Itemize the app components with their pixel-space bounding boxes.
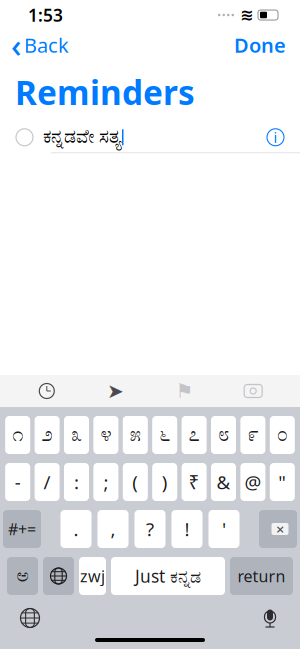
button[interactable]: ‹ <box>0 20 69 70</box>
button[interactable]: / <box>35 463 60 501</box>
button[interactable]: ೫ <box>123 416 148 454</box>
button[interactable]: Location <box>94 376 138 406</box>
staticText: Reminders <box>15 70 195 114</box>
button[interactable]: ಅ <box>7 557 38 595</box>
button[interactable]: ೩ <box>64 416 89 454</box>
button[interactable]: Just ಕನ್ನಡ <box>111 557 225 595</box>
staticText: , <box>110 517 115 541</box>
staticText: Done <box>234 32 286 58</box>
button[interactable]: ; <box>93 463 118 501</box>
staticText: return <box>237 565 285 587</box>
button[interactable]: ) <box>152 463 177 501</box>
button[interactable]: ೮ <box>211 416 236 454</box>
staticText: . <box>73 517 78 541</box>
staticText: zwj <box>80 565 105 587</box>
staticText: ೨ <box>42 425 53 445</box>
staticText: ೪ <box>100 425 111 445</box>
button[interactable]: - <box>5 463 30 501</box>
button[interactable]: ೭ <box>182 416 207 454</box>
staticText: ' <box>222 517 226 541</box>
staticText: ೭ <box>189 425 200 445</box>
button[interactable]: Done <box>234 28 300 62</box>
button[interactable]: Flag <box>162 376 206 406</box>
staticText: @ <box>244 470 261 494</box>
staticText: ; <box>103 470 108 494</box>
button[interactable]: Recents <box>25 376 69 406</box>
button[interactable]: ೬ <box>152 416 177 454</box>
button[interactable]: ₹ <box>182 463 207 501</box>
button[interactable]: : <box>64 463 89 501</box>
staticText: ೬ <box>159 425 170 445</box>
button[interactable]: ೧ <box>5 416 30 454</box>
staticText: ೩ <box>71 425 82 445</box>
staticText: ! <box>184 517 189 541</box>
staticText: ಅ <box>16 567 28 585</box>
button[interactable]: Camera <box>231 376 275 406</box>
staticText: 1:53 <box>28 3 63 26</box>
staticText: ೮ <box>218 425 229 445</box>
staticText: ) <box>162 470 168 494</box>
staticText: ೧ <box>12 425 23 445</box>
staticText: ಕನ್ನಡವೇ ಸತ್ಯ <box>43 128 122 146</box>
button[interactable]: & <box>211 463 236 501</box>
button[interactable]: ೯ <box>240 416 265 454</box>
button[interactable]: Details <box>267 127 300 147</box>
button[interactable]: Dictation <box>248 603 300 633</box>
button[interactable]: " <box>270 463 295 501</box>
button[interactable]: ' <box>208 510 239 548</box>
staticText: ₹ <box>189 470 200 494</box>
button[interactable]: ? <box>134 510 165 548</box>
staticText: ‹ <box>11 24 21 66</box>
staticText: & <box>216 470 230 494</box>
staticText: - <box>15 470 21 494</box>
button[interactable]: ( <box>123 463 148 501</box>
button[interactable]: return <box>230 557 293 595</box>
button[interactable]: Next keyboard <box>43 557 74 595</box>
button[interactable]: , <box>97 510 128 548</box>
staticText: ೫ <box>130 425 141 445</box>
staticText: " <box>278 470 286 494</box>
button[interactable]: ೪ <box>93 416 118 454</box>
button[interactable]: #+= <box>3 510 41 548</box>
staticText: ➤ <box>107 380 124 402</box>
button[interactable]: . <box>60 510 91 548</box>
staticText: ( <box>132 470 138 494</box>
staticText: ? <box>146 517 154 541</box>
button[interactable]: @ <box>240 463 265 501</box>
staticText: Just ಕನ್ನಡ <box>135 564 201 587</box>
staticText: ⚑ <box>175 380 193 402</box>
staticText: × <box>276 519 284 539</box>
staticText: ೯ <box>247 425 258 445</box>
staticText: #+= <box>8 518 36 540</box>
staticText: i <box>273 127 277 147</box>
button[interactable]: zwj <box>79 557 106 595</box>
staticText: Back <box>24 32 69 58</box>
button[interactable]: ೨ <box>35 416 60 454</box>
staticText: / <box>44 470 51 494</box>
button[interactable]: ! <box>171 510 202 548</box>
staticText: : <box>74 470 79 494</box>
button[interactable]: Next keyboard <box>0 603 52 633</box>
button[interactable]: ೦ <box>270 416 295 454</box>
button[interactable]: Delete <box>259 510 297 548</box>
staticText: ೦ <box>277 425 288 445</box>
staticText: ≋ <box>240 6 253 24</box>
